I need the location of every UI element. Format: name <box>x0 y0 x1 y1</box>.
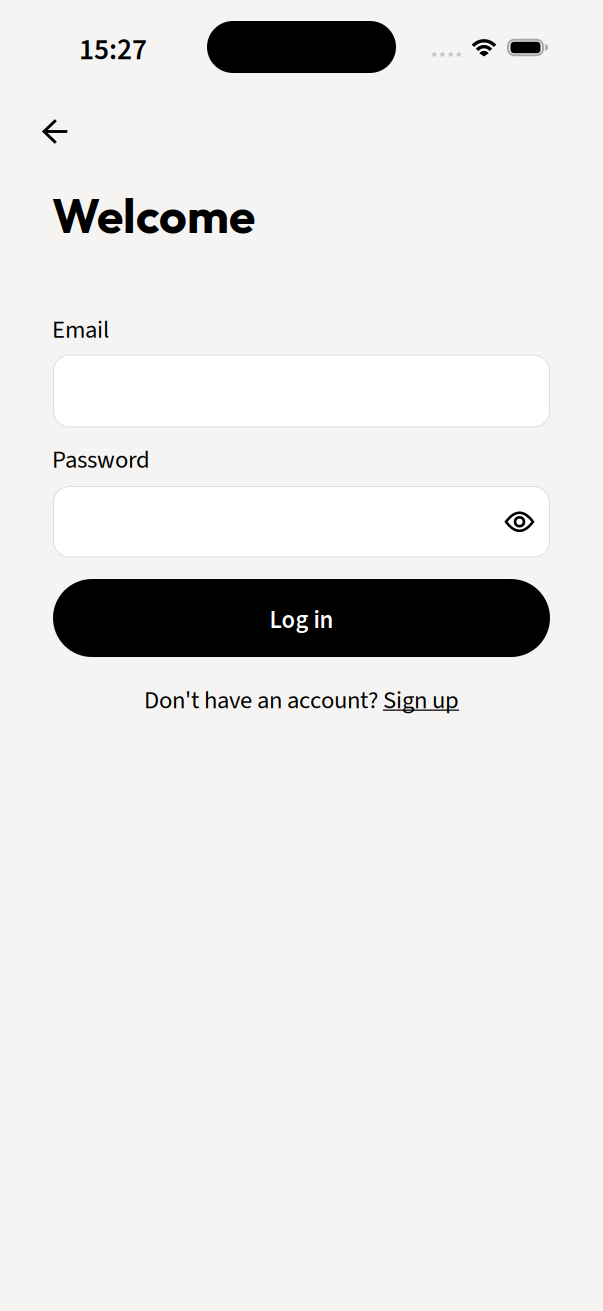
staticText: Email <box>52 312 109 348</box>
button[interactable]: Email <box>53 355 550 427</box>
button[interactable]: Show password <box>500 506 539 537</box>
staticText: Don't have an account? <box>144 683 383 718</box>
button[interactable]: Sign up <box>383 683 459 718</box>
button[interactable]: Password <box>53 486 550 557</box>
button[interactable]: Back <box>34 110 77 153</box>
staticText: Log in <box>269 603 333 638</box>
staticText: Password <box>52 442 150 477</box>
staticText: Welcome <box>52 185 255 245</box>
button[interactable]: Log in <box>53 579 550 657</box>
staticText: Sign up <box>383 683 459 718</box>
staticText: 15:27 <box>79 29 147 71</box>
